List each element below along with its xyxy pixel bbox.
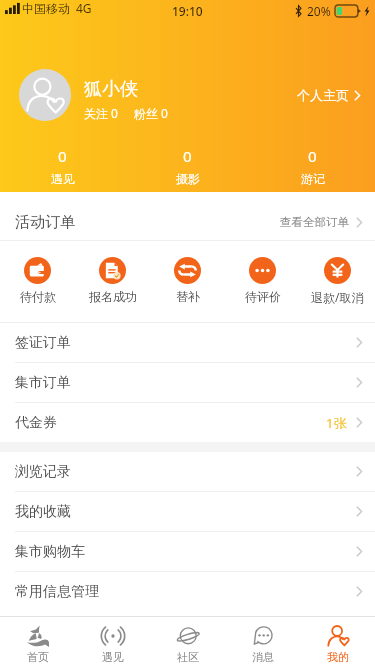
staticText: 签证订单 xyxy=(15,334,71,352)
staticText: 关注 0 xyxy=(84,105,118,121)
staticText: 常用信息管理 xyxy=(15,583,99,601)
staticText: 粉丝 0 xyxy=(134,105,168,121)
button[interactable]: 0 xyxy=(0,146,125,186)
staticText: 遇见 xyxy=(102,650,124,664)
button[interactable]: 替补 xyxy=(150,241,225,322)
staticText: 19:10 xyxy=(172,3,203,19)
staticText: 首页 xyxy=(27,650,49,664)
button[interactable]: 集市订单 xyxy=(0,363,375,402)
staticText: 报名成功 xyxy=(89,289,137,304)
staticText: 狐小侠 xyxy=(84,78,138,101)
button[interactable]: 消息 xyxy=(225,620,300,664)
staticText: 游记 xyxy=(301,171,325,186)
staticText: 0 xyxy=(308,146,317,166)
button[interactable]: 我的收藏 xyxy=(0,492,375,531)
button[interactable]: 签证订单 xyxy=(0,323,375,362)
staticText: 1张 xyxy=(326,414,347,432)
staticText: 代金券 xyxy=(15,414,57,432)
staticText: 社区 xyxy=(177,650,199,664)
staticText: 中国移动 xyxy=(22,1,70,16)
button[interactable]: 浏览记录 xyxy=(0,452,375,491)
staticText: 我的收藏 xyxy=(15,503,71,521)
staticText: 查看全部订单 xyxy=(280,215,349,229)
button[interactable]: 代金券 xyxy=(0,403,375,442)
staticText: 集市订单 xyxy=(15,374,71,392)
staticText: 集市购物车 xyxy=(15,543,85,561)
staticText: 0 xyxy=(183,146,192,166)
staticText: 待付款 xyxy=(20,289,56,304)
button[interactable]: 遇见 xyxy=(75,620,150,664)
button[interactable]: 0 xyxy=(250,146,375,186)
button[interactable]: 集市购物车 xyxy=(0,532,375,571)
staticText: 0 xyxy=(58,146,67,166)
button[interactable]: 社区 xyxy=(150,620,225,664)
staticText: 消息 xyxy=(252,650,274,664)
button[interactable]: 个人主页 xyxy=(285,79,375,111)
button[interactable]: 待付款 xyxy=(0,241,75,322)
button[interactable]: 待评价 xyxy=(225,241,300,322)
staticText: 浏览记录 xyxy=(15,463,71,481)
button[interactable]: 我的 xyxy=(300,620,375,664)
staticText: 摄影 xyxy=(176,171,200,186)
button[interactable]: 报名成功 xyxy=(75,241,150,322)
button[interactable]: 0 xyxy=(125,146,250,186)
staticText: 替补 xyxy=(176,289,200,304)
staticText: 个人主页 xyxy=(297,87,349,103)
staticText: 我的 xyxy=(327,650,349,664)
staticText: 20% xyxy=(307,3,331,19)
button[interactable]: 活动订单 xyxy=(0,192,375,240)
staticText: 遇见 xyxy=(51,171,75,186)
staticText: 退款/取消 xyxy=(311,289,364,305)
staticText: 待评价 xyxy=(245,289,281,304)
button[interactable]: 首页 xyxy=(0,620,75,664)
staticText: 4G xyxy=(76,0,92,16)
staticText: 活动订单 xyxy=(15,213,75,232)
button[interactable]: 常用信息管理 xyxy=(0,572,375,611)
button[interactable]: 退款/取消 xyxy=(300,241,375,322)
